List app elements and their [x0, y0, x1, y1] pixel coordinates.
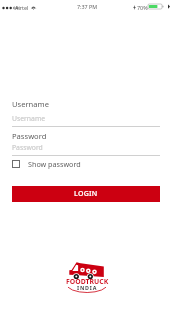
staticText: 70% — [137, 4, 148, 11]
button[interactable]: LOGIN — [12, 186, 160, 202]
staticText: 7:37 PM — [77, 3, 98, 10]
staticText: Username — [12, 99, 49, 109]
staticText: Password — [12, 131, 47, 141]
staticText: Show password — [28, 159, 81, 169]
staticText: INDIA — [77, 284, 98, 291]
button[interactable]: Show password — [12, 158, 81, 169]
staticText: Airtel — [15, 4, 29, 11]
staticText: Username — [12, 114, 46, 123]
staticText: Password — [12, 143, 43, 152]
staticText: LOGIN — [74, 189, 98, 199]
staticText: FOODTRUCK — [66, 277, 109, 286]
